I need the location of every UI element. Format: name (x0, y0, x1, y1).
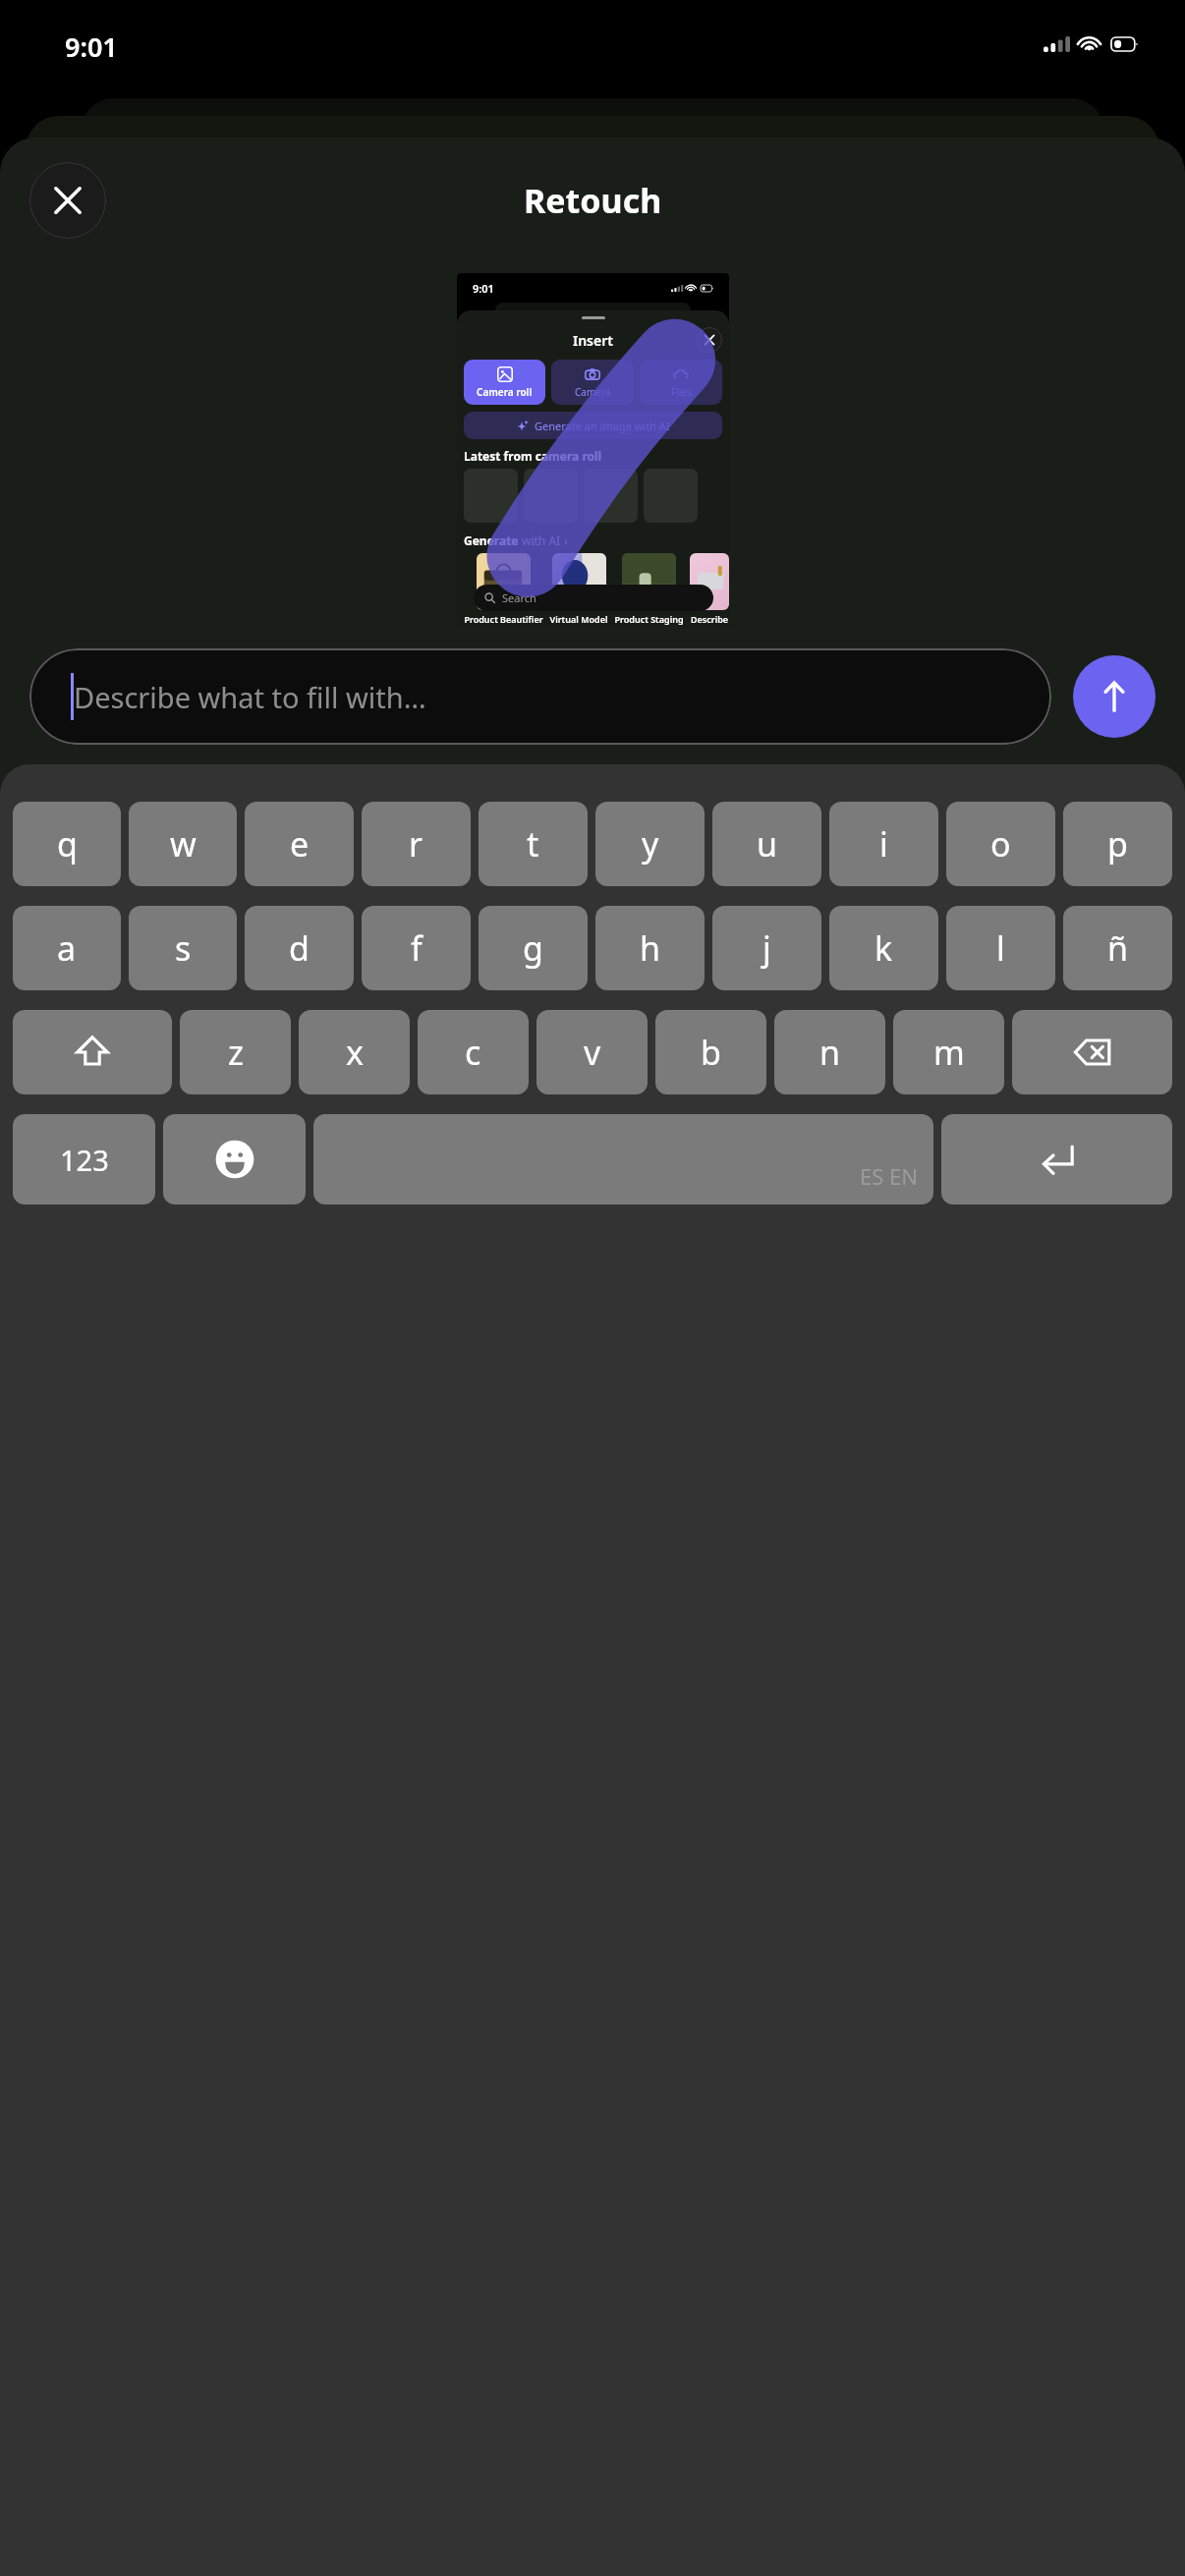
button[interactable]: Camera (551, 360, 634, 405)
staticText: y (642, 821, 659, 867)
staticText: Product Staging (614, 613, 684, 625)
staticText: f (411, 925, 423, 971)
staticText: Virtual Model (549, 613, 608, 625)
button[interactable]: Space (313, 1114, 933, 1204)
staticText: z (228, 1030, 244, 1075)
staticText: Generate (464, 532, 522, 548)
staticText: Camera roll (477, 385, 533, 399)
button[interactable] (552, 553, 606, 610)
button[interactable]: v (536, 1010, 648, 1094)
button[interactable]: Files (640, 360, 722, 405)
staticText: s (175, 925, 192, 971)
staticText: p (1107, 821, 1128, 867)
button[interactable]: 123 (13, 1114, 155, 1204)
button[interactable]: n (774, 1010, 885, 1094)
staticText: w (170, 821, 197, 867)
button[interactable]: c (418, 1010, 529, 1094)
staticText: j (762, 925, 771, 971)
staticText: Retouch (524, 178, 662, 223)
button[interactable]: Close sheet (697, 327, 722, 353)
staticText: e (290, 821, 310, 867)
staticText: l (996, 925, 1005, 971)
button[interactable] (690, 553, 729, 610)
staticText: Search (502, 590, 536, 605)
button[interactable]: z (180, 1010, 291, 1094)
staticText: c (465, 1030, 481, 1075)
button[interactable] (477, 553, 531, 610)
button[interactable]: Generate an image with AI (464, 412, 722, 439)
button[interactable]: s (129, 906, 237, 990)
staticText: q (57, 821, 78, 867)
button[interactable]: Backspace (1012, 1010, 1172, 1094)
button[interactable]: g (479, 906, 588, 990)
button[interactable]: m (893, 1010, 1004, 1094)
button[interactable]: l (946, 906, 1055, 990)
staticText: ES EN (860, 1161, 918, 1191)
button[interactable]: f (362, 906, 471, 990)
button[interactable]: t (479, 802, 588, 886)
button[interactable]: h (595, 906, 705, 990)
button[interactable]: b (655, 1010, 766, 1094)
button[interactable]: Camera roll (464, 360, 545, 405)
staticText: Files (671, 385, 692, 399)
button[interactable]: e (245, 802, 354, 886)
staticText: 123 (60, 1141, 109, 1179)
button[interactable]: Describe what to fill with… (29, 648, 1051, 745)
staticText: o (990, 821, 1011, 867)
button[interactable]: a (13, 906, 121, 990)
button[interactable]: u (712, 802, 821, 886)
staticText: Product Beautifier (464, 613, 543, 625)
staticText: x (346, 1030, 364, 1075)
staticText: r (409, 821, 423, 867)
staticText: k (875, 925, 893, 971)
staticText: i (879, 821, 888, 867)
button[interactable]: j (712, 906, 821, 990)
staticText: g (523, 925, 543, 971)
button[interactable]: Emoji (163, 1114, 306, 1204)
button[interactable]: d (245, 906, 354, 990)
staticText: Camera (575, 385, 611, 399)
staticText: › (564, 532, 568, 548)
button[interactable] (524, 469, 578, 523)
button[interactable] (622, 553, 676, 610)
staticText: Describe a (690, 613, 729, 625)
staticText: m (933, 1030, 965, 1075)
button[interactable]: r (362, 802, 471, 886)
button[interactable]: y (595, 802, 705, 886)
button[interactable]: w (129, 802, 237, 886)
staticText: u (757, 821, 778, 867)
button[interactable] (464, 469, 518, 523)
button[interactable]: Shift (13, 1010, 172, 1094)
staticText: n (819, 1030, 841, 1075)
button[interactable]: q (13, 802, 121, 886)
staticText: Describe what to fill with… (74, 678, 426, 716)
staticText: 9:01 (473, 281, 494, 296)
button[interactable]: x (299, 1010, 410, 1094)
staticText: Latest from camera roll (464, 448, 602, 464)
staticText: a (57, 925, 77, 971)
button[interactable]: o (946, 802, 1055, 886)
staticText: 9:01 (65, 28, 118, 65)
staticText: with AI (522, 532, 564, 548)
button[interactable] (584, 469, 638, 523)
staticText: v (584, 1030, 601, 1075)
button[interactable]: k (829, 906, 938, 990)
staticText: Generate an image with AI (535, 419, 670, 433)
staticText: d (289, 925, 310, 971)
button[interactable]: Send (1073, 655, 1156, 738)
button[interactable]: Enter (941, 1114, 1172, 1204)
staticText: t (527, 821, 539, 867)
button[interactable]: p (1063, 802, 1172, 886)
staticText: h (640, 925, 661, 971)
staticText: Insert (573, 331, 613, 350)
button[interactable]: Close (29, 162, 106, 239)
button[interactable]: i (829, 802, 938, 886)
button[interactable]: Search (474, 585, 713, 611)
staticText: ñ (1107, 925, 1129, 971)
staticText: b (701, 1030, 721, 1075)
button[interactable]: ñ (1063, 906, 1172, 990)
